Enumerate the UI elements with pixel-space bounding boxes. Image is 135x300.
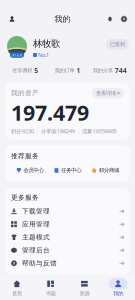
staticText: 我的订单	[54, 67, 74, 74]
button[interactable]: 积分商城	[86, 167, 124, 174]
button[interactable]: 管理后台	[11, 244, 124, 257]
staticText: 分享值:188249	[41, 128, 75, 135]
staticText: 下载管理	[22, 207, 50, 215]
staticText: 任务中心	[61, 167, 81, 174]
staticText: 744	[115, 66, 127, 75]
staticText: 林牧歌	[33, 38, 60, 49]
staticText: 应用管理	[22, 220, 50, 228]
button[interactable]: Account	[3, 12, 21, 26]
staticText: 书架	[46, 290, 56, 297]
button[interactable]: 书架	[34, 278, 68, 297]
staticText: 首页	[12, 290, 22, 297]
staticText: 查看详情	[96, 90, 116, 96]
staticText: 我的分享	[93, 67, 113, 74]
button[interactable]: 主题模式	[11, 231, 124, 244]
staticText: 5	[34, 66, 38, 75]
button[interactable]: Settings	[116, 12, 132, 26]
button[interactable]: 下载管理	[11, 205, 124, 218]
staticText: 我的	[54, 14, 70, 24]
button[interactable]: 会员中心	[11, 167, 49, 174]
staticText: 更多服务	[11, 194, 39, 202]
button[interactable]: 资源	[67, 278, 101, 297]
staticText: 积分:9230	[11, 128, 34, 135]
staticText: LV5会员	[11, 53, 22, 57]
button[interactable]: 帮助与反馈	[11, 257, 124, 270]
staticText: |	[77, 128, 80, 135]
button[interactable]: 应用管理	[11, 218, 124, 231]
staticText: 在学课程	[12, 67, 32, 74]
button[interactable]: 首页	[0, 278, 34, 297]
staticText: 我的资产	[11, 89, 39, 97]
staticText: 推荐服务	[11, 152, 39, 160]
staticText: 会员中心	[24, 167, 44, 174]
button[interactable]: 我的	[101, 278, 135, 297]
button[interactable]: 任务中心	[49, 167, 86, 174]
staticText: 1	[76, 66, 80, 75]
button[interactable]: 查看详情	[92, 88, 124, 98]
staticText: 帮助与反馈	[22, 259, 57, 267]
staticText: 我的	[113, 290, 123, 297]
staticText: No.1	[38, 51, 49, 59]
staticText: 管理后台	[22, 246, 50, 254]
staticText: |	[36, 128, 39, 135]
staticText: 资源	[79, 290, 89, 297]
staticText: 已签到	[110, 41, 125, 48]
staticText: 197.479	[11, 98, 89, 127]
staticText: 积分商城	[99, 167, 119, 174]
staticText: 流量:16556MB	[82, 128, 116, 135]
staticText: 主题模式	[22, 233, 50, 241]
button[interactable]: 已签到	[106, 39, 129, 50]
button[interactable]: Notifications	[104, 12, 116, 26]
